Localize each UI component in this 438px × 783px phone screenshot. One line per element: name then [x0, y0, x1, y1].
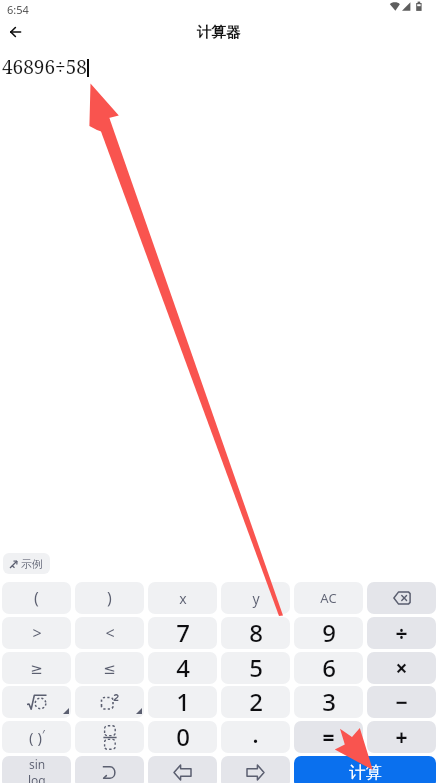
- button[interactable]: [75, 756, 144, 783]
- staticText: ×: [395, 654, 408, 683]
- button[interactable]: [367, 582, 436, 614]
- button[interactable]: 5: [221, 652, 290, 684]
- button[interactable]: Back: [0, 19, 33, 44]
- staticText: >: [32, 622, 42, 644]
- staticText: 计算: [349, 762, 382, 783]
- staticText: sin: [29, 756, 46, 772]
- button[interactable]: 9: [294, 617, 363, 649]
- button[interactable]: [148, 756, 217, 783]
- staticText: =: [322, 723, 335, 752]
- button[interactable]: >: [2, 617, 71, 649]
- staticText: 示例: [21, 557, 43, 571]
- button[interactable]: (: [2, 582, 71, 614]
- button[interactable]: [221, 756, 290, 783]
- button[interactable]: 3: [294, 686, 363, 718]
- staticText: ): [107, 587, 112, 609]
- staticText: ′: [42, 726, 45, 742]
- button[interactable]: ≤: [75, 652, 144, 684]
- staticText: log: [28, 772, 46, 783]
- staticText: AC: [320, 589, 337, 607]
- button[interactable]: 示例: [3, 553, 50, 574]
- button[interactable]: <: [75, 617, 144, 649]
- staticText: 2: [249, 686, 263, 717]
- button[interactable]: [75, 686, 144, 718]
- staticText: 1: [176, 686, 190, 717]
- staticText: 6:54: [7, 2, 29, 17]
- staticText: 6: [322, 652, 336, 683]
- staticText: 8: [249, 617, 263, 648]
- button[interactable]: ≥: [2, 652, 71, 684]
- button[interactable]: [2, 686, 71, 718]
- button[interactable]: ): [75, 582, 144, 614]
- staticText: 46896÷58: [2, 54, 87, 80]
- button[interactable]: 1: [148, 686, 217, 718]
- staticText: ≥: [30, 660, 43, 677]
- staticText: 4: [176, 652, 190, 683]
- button[interactable]: y: [221, 582, 290, 614]
- button[interactable]: AC: [294, 582, 363, 614]
- staticText: 3: [322, 686, 336, 717]
- button[interactable]: ( ): [2, 721, 71, 753]
- button[interactable]: .: [221, 721, 290, 753]
- staticText: 0: [176, 721, 190, 752]
- staticText: −: [395, 688, 408, 717]
- staticText: x: [179, 589, 187, 608]
- button[interactable]: sin: [2, 756, 71, 783]
- button[interactable]: 7: [148, 617, 217, 649]
- button[interactable]: 计算: [294, 756, 436, 783]
- button[interactable]: ÷: [367, 617, 436, 649]
- button[interactable]: 6: [294, 652, 363, 684]
- staticText: y: [252, 589, 260, 608]
- staticText: <: [105, 622, 115, 644]
- staticText: 7: [176, 617, 190, 648]
- staticText: ÷: [395, 619, 408, 648]
- button[interactable]: =: [294, 721, 363, 753]
- button[interactable]: [75, 721, 144, 753]
- button[interactable]: x: [148, 582, 217, 614]
- button[interactable]: 2: [221, 686, 290, 718]
- staticText: 9: [322, 617, 336, 648]
- button[interactable]: 8: [221, 617, 290, 649]
- button[interactable]: +: [367, 721, 436, 753]
- staticText: .: [252, 721, 259, 749]
- staticText: ≤: [103, 660, 116, 677]
- staticText: (: [34, 587, 39, 609]
- staticText: ( ): [29, 727, 42, 747]
- button[interactable]: 4: [148, 652, 217, 684]
- button[interactable]: ×: [367, 652, 436, 684]
- button[interactable]: −: [367, 686, 436, 718]
- button[interactable]: 0: [148, 721, 217, 753]
- staticText: 计算器: [197, 23, 241, 41]
- staticText: 5: [249, 652, 263, 683]
- staticText: +: [395, 723, 408, 752]
